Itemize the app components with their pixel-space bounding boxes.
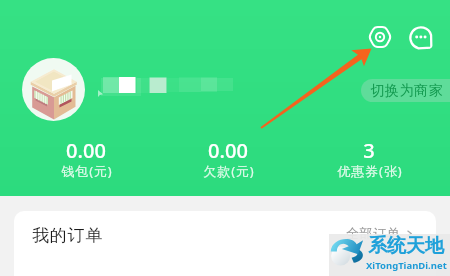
staticText: 欠款(元): [203, 162, 255, 180]
button[interactable]: 全部订单: [346, 225, 414, 241]
button[interactable]: Settings: [365, 21, 395, 51]
staticText: 优惠券(张): [337, 162, 403, 180]
staticText: 全部订单: [346, 225, 401, 241]
staticText: 系统天地: [368, 234, 444, 258]
staticText: 3: [363, 137, 375, 164]
button[interactable]: 3: [298, 137, 439, 182]
staticText: 切换为商家: [370, 82, 443, 100]
staticText: 我的订单: [32, 225, 104, 246]
button[interactable]: 0.00: [15, 137, 157, 182]
staticText: 0.00: [66, 137, 106, 164]
staticText: XiTongTianDi.net: [366, 259, 447, 272]
staticText: 钱包(元): [61, 162, 113, 180]
button[interactable]: 切换为商家: [361, 79, 450, 102]
button[interactable]: 0.00: [157, 137, 298, 182]
button[interactable]: Messages: [406, 22, 436, 52]
staticText: 0.00: [208, 137, 248, 164]
button[interactable]: Shop avatar: [22, 58, 85, 121]
